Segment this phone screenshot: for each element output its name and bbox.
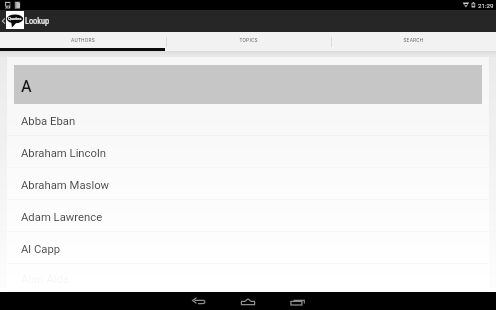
staticText: Abraham Lincoln xyxy=(21,147,106,160)
staticText: AUTHORS xyxy=(71,37,95,43)
button[interactable]: Recent apps xyxy=(278,292,318,310)
staticText: SEARCH xyxy=(403,37,424,43)
button[interactable]: Adam Lawrence xyxy=(7,200,489,232)
staticText: Quotes xyxy=(8,16,22,21)
button[interactable]: SEARCH xyxy=(331,32,496,51)
button[interactable]: Abraham Lincoln xyxy=(7,136,489,168)
staticText: Abba Eban xyxy=(21,115,76,128)
button[interactable]: TOPICS xyxy=(166,32,331,51)
staticText: Adam Lawrence xyxy=(21,211,103,224)
staticText: Abraham Maslow xyxy=(21,179,110,192)
button[interactable]: Navigate up xyxy=(0,15,6,27)
staticText: TOPICS xyxy=(239,37,258,43)
button[interactable]: Quotes app icon xyxy=(6,11,24,29)
button[interactable]: Al Capp xyxy=(7,232,489,264)
button[interactable]: Abba Eban xyxy=(7,104,489,136)
button[interactable]: Home xyxy=(228,292,268,310)
staticText: A xyxy=(21,77,32,96)
staticText: Al Capp xyxy=(21,243,61,256)
staticText: Lookup xyxy=(25,16,50,26)
button[interactable]: Abraham Maslow xyxy=(7,168,489,200)
staticText: 21:29 xyxy=(478,2,494,9)
button[interactable]: Back xyxy=(179,292,219,310)
button[interactable]: AUTHORS xyxy=(0,32,166,51)
